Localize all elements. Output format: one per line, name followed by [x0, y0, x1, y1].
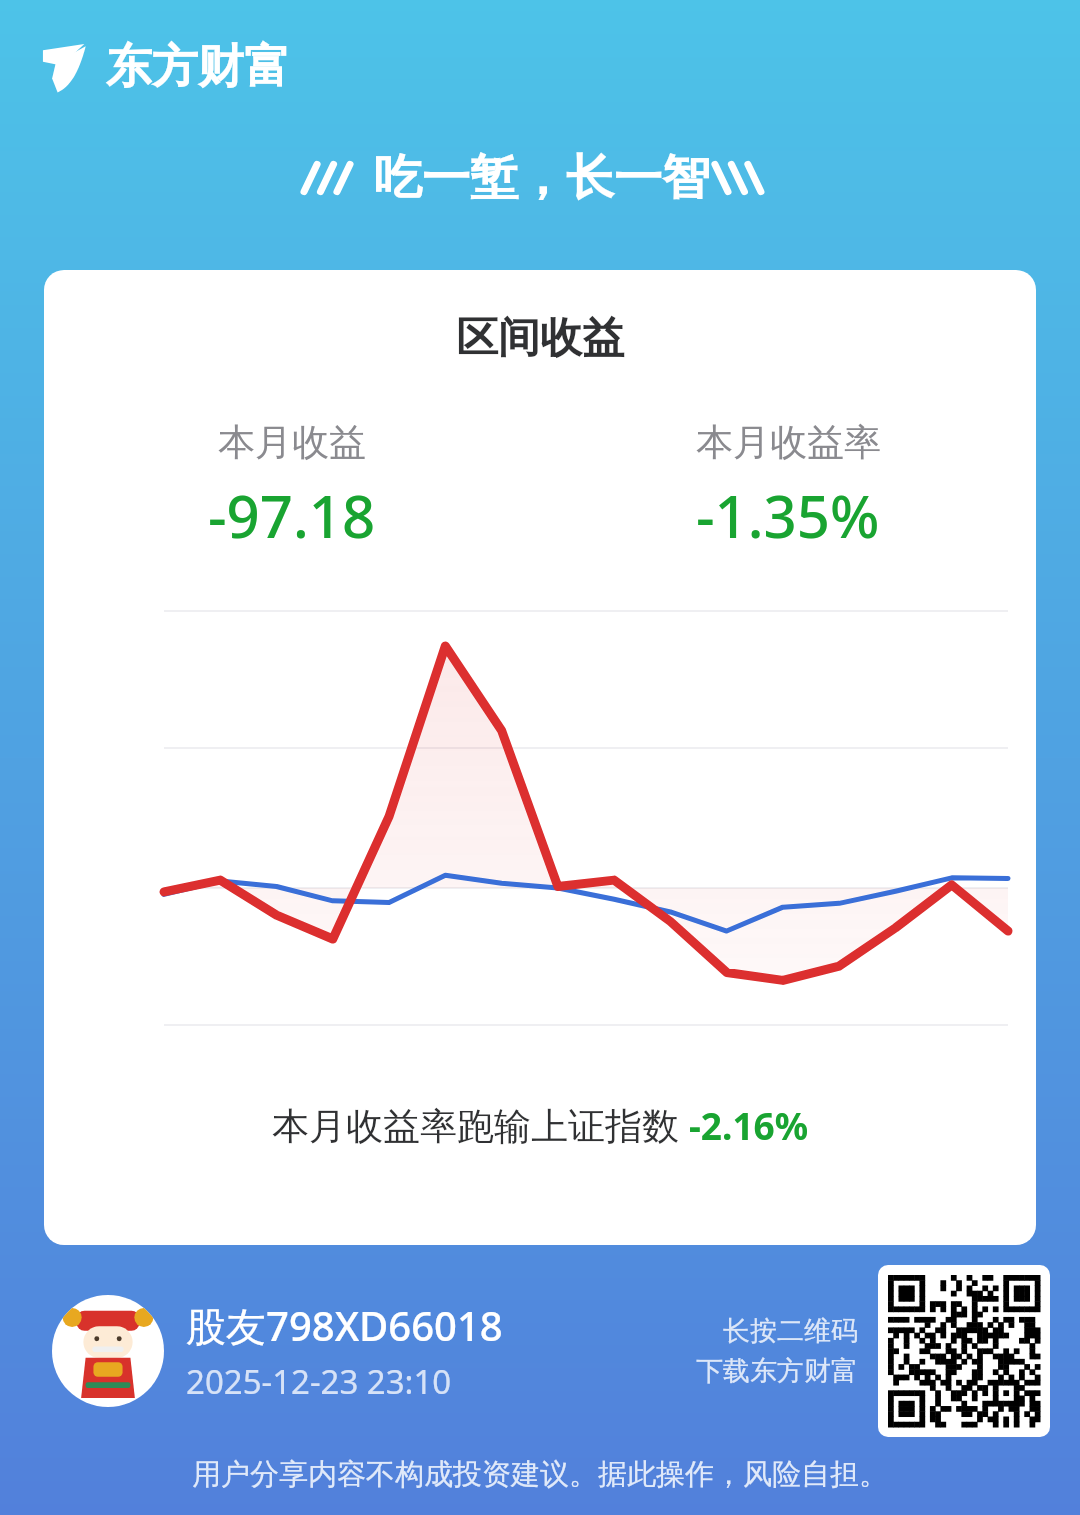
staticText: 本月收益率	[696, 419, 881, 466]
staticText: 本月收益	[218, 419, 366, 466]
staticText: 用户分享内容不构成投资建议。据此操作，风险自担。	[0, 1456, 1080, 1493]
staticText: 长按二维码	[723, 1314, 858, 1348]
staticText: 区间收益	[44, 312, 1036, 365]
staticText: -1.35%	[696, 476, 880, 555]
button[interactable]: 本月收益率	[540, 419, 1036, 555]
staticText: 东方财富	[106, 38, 290, 96]
staticText: 吃一堑，长一智	[374, 148, 710, 208]
button[interactable]: 头像	[52, 1295, 164, 1407]
staticText: 本月收益率跑输上证指数	[272, 1099, 689, 1150]
staticText: -2.16%	[689, 1100, 809, 1150]
staticText: -97.18	[208, 476, 376, 555]
staticText: 2025-12-23 23:10	[186, 1359, 452, 1404]
staticText: 下载东方财富	[696, 1354, 858, 1388]
button[interactable]: 二维码	[878, 1265, 1050, 1437]
button[interactable]: 东方财富	[42, 38, 1080, 96]
staticText: 股友798XD66018	[186, 1298, 503, 1353]
button[interactable]: 本月收益	[44, 419, 540, 555]
